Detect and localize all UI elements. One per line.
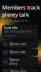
staticText: Option four: [9, 70, 26, 72]
staticText: Option one: [9, 42, 26, 46]
staticText: Members track: [2, 4, 40, 11]
staticText: Option three: [9, 58, 19, 65]
staticText: Option two: [9, 50, 25, 54]
button[interactable]: Option one: [2, 41, 38, 48]
staticText: Subtitle copy here: [2, 19, 28, 23]
staticText: Card title: [4, 26, 18, 30]
button[interactable]: Card title: [2, 25, 38, 39]
button[interactable]: Option two: [2, 49, 38, 56]
staticText: card body copy goes: [4, 30, 32, 33]
button[interactable]: Option three: [2, 57, 38, 67]
button[interactable]: Option four: [2, 68, 38, 72]
staticText: plenty talk: [2, 11, 29, 18]
